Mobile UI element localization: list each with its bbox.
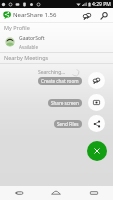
staticText: GaatorSoft bbox=[19, 35, 45, 42]
staticText: My Profile bbox=[4, 24, 30, 31]
button[interactable]: Share screen bbox=[48, 99, 82, 107]
button[interactable]: Home bbox=[37, 186, 75, 200]
staticText: 4:29 PM bbox=[92, 1, 111, 8]
button[interactable]: Create chat room bbox=[38, 77, 82, 85]
button[interactable]: Chats bbox=[80, 9, 93, 22]
staticText: Nearby Meetings bbox=[4, 54, 49, 61]
staticText: Searching... bbox=[38, 69, 66, 76]
button[interactable]: Share screen bbox=[88, 94, 105, 111]
button[interactable]: Back bbox=[0, 186, 37, 200]
button[interactable]: Create chat room bbox=[88, 72, 105, 89]
staticText: Send Files bbox=[57, 121, 79, 127]
staticText: NearShare 1.56 bbox=[13, 11, 57, 19]
staticText: Create chat room bbox=[41, 78, 79, 84]
button[interactable]: GaatorSoft bbox=[0, 34, 113, 50]
staticText: Share screen bbox=[51, 100, 79, 106]
button[interactable]: Send Files bbox=[54, 120, 82, 128]
button[interactable]: Recents bbox=[75, 186, 113, 200]
button[interactable]: Close menu bbox=[87, 141, 107, 161]
staticText: Available bbox=[19, 44, 38, 50]
button[interactable]: Search bbox=[97, 9, 110, 22]
button[interactable]: Send Files bbox=[88, 115, 105, 132]
